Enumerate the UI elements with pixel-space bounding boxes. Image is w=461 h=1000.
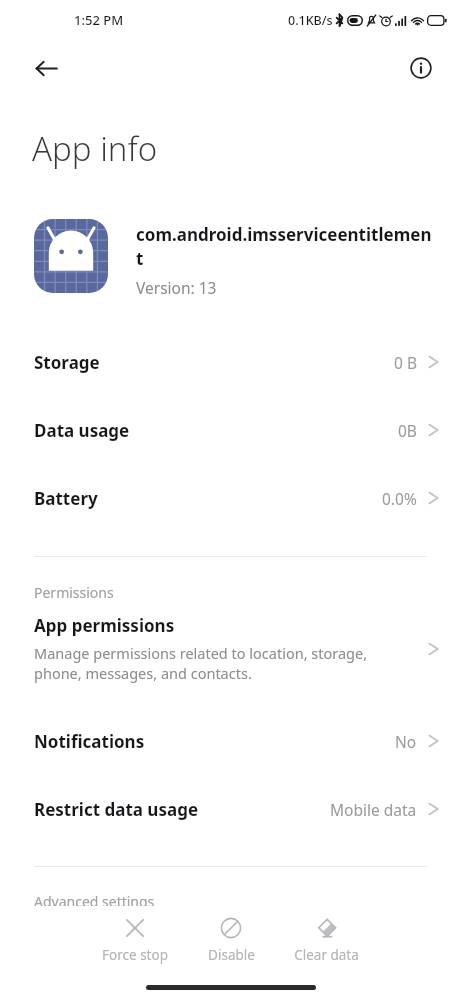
button[interactable]: Storage (0, 328, 461, 396)
staticText: Storage (34, 351, 394, 374)
staticText: Restrict data usage (34, 798, 330, 821)
staticText: Manage permissions related to location, … (34, 643, 368, 683)
staticText: Version: 13 (136, 277, 217, 298)
button[interactable]: App permissions (0, 612, 461, 685)
staticText: 0 B (394, 352, 417, 373)
staticText: 1:52 PM (74, 11, 124, 29)
staticText: Force stop (102, 946, 168, 964)
staticText: Notifications (34, 730, 395, 753)
button[interactable]: App info (399, 46, 443, 90)
staticText: 0B (398, 420, 417, 441)
staticText: com.android.imsserviceentitlement (136, 223, 435, 270)
button[interactable]: Force stop (92, 914, 178, 966)
staticText: Battery (34, 487, 382, 510)
staticText: Data usage (34, 419, 398, 442)
button[interactable]: Battery (0, 464, 461, 532)
button[interactable]: Notifications (0, 707, 461, 775)
staticText: Disable (208, 946, 255, 964)
button[interactable]: Back (22, 44, 70, 92)
button[interactable]: Restrict data usage (0, 775, 461, 843)
staticText: Mobile data (330, 799, 417, 820)
button[interactable]: Data usage (0, 396, 461, 464)
staticText: Clear data (294, 946, 359, 964)
button[interactable]: Disable (188, 914, 274, 966)
staticText: No (395, 731, 417, 752)
staticText: 0.0% (382, 488, 417, 509)
staticText: Advanced settings (34, 892, 155, 911)
button[interactable]: Clear data (283, 914, 369, 966)
staticText: Permissions (34, 583, 114, 602)
staticText: App permissions (34, 614, 175, 637)
staticText: App info (32, 126, 158, 171)
staticText: 0.1KB/s (288, 12, 333, 29)
